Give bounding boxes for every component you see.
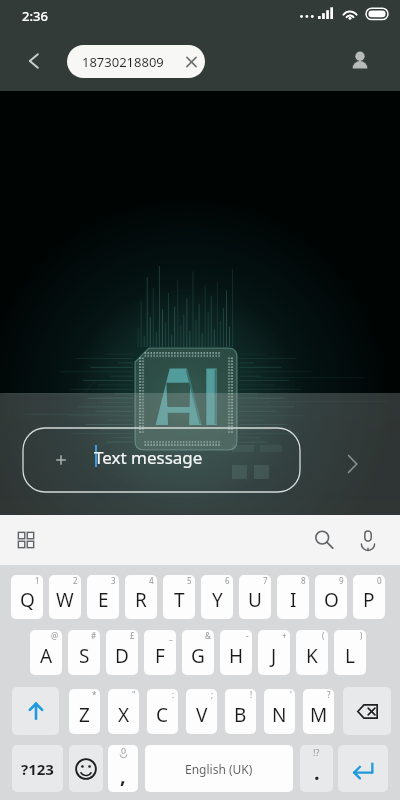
- staticText: V: [196, 702, 208, 728]
- button[interactable]: Enter: [338, 745, 388, 792]
- staticText: :: [172, 689, 175, 700]
- staticText: #: [91, 630, 97, 641]
- staticText: Q: [20, 587, 35, 613]
- staticText: G: [191, 643, 205, 669]
- staticText: B: [234, 702, 247, 728]
- button[interactable]: _: [144, 630, 176, 675]
- button[interactable]: ,: [108, 745, 138, 792]
- button[interactable]: -: [220, 630, 252, 675]
- staticText: 0: [377, 575, 382, 586]
- button[interactable]: 6: [201, 575, 233, 619]
- staticText: ,: [120, 762, 126, 789]
- staticText: 9: [339, 575, 344, 586]
- staticText: ': [290, 689, 292, 700]
- button[interactable]: #: [68, 630, 100, 675]
- button[interactable]: Backspace: [343, 687, 391, 735]
- staticText: F: [155, 643, 165, 669]
- button[interactable]: @: [30, 630, 62, 675]
- button[interactable]: :: [147, 689, 178, 734]
- staticText: (: [322, 630, 325, 641]
- staticText: J: [271, 643, 277, 669]
- staticText: P: [363, 587, 375, 613]
- staticText: N: [272, 702, 287, 728]
- button[interactable]: 9: [315, 575, 347, 619]
- button[interactable]: !?: [300, 745, 333, 792]
- button[interactable]: Add attachment: [46, 445, 76, 475]
- staticText: &: [205, 630, 211, 641]
- staticText: 1: [35, 575, 40, 586]
- staticText: T: [174, 587, 185, 613]
- button[interactable]: English (UK): [145, 745, 293, 792]
- button[interactable]: (: [296, 630, 328, 675]
- staticText: 2: [73, 575, 78, 586]
- button[interactable]: 0: [353, 575, 385, 619]
- staticText: 18730218809: [82, 53, 164, 71]
- staticText: 2:36: [22, 7, 48, 25]
- button[interactable]: ': [264, 689, 295, 734]
- button[interactable]: ;: [186, 689, 217, 734]
- staticText: E: [98, 587, 109, 613]
- staticText: Z: [79, 702, 90, 728]
- button[interactable]: £: [106, 630, 138, 675]
- staticText: K: [306, 643, 318, 669]
- button[interactable]: *: [69, 689, 100, 734]
- staticText: H: [229, 643, 244, 669]
- staticText: _: [169, 630, 173, 641]
- button[interactable]: !: [225, 689, 256, 734]
- button[interactable]: &: [182, 630, 214, 675]
- staticText: O: [324, 587, 339, 613]
- staticText: C: [156, 702, 169, 728]
- staticText: I: [290, 587, 297, 613]
- staticText: D: [115, 643, 129, 669]
- button[interactable]: Back: [18, 46, 48, 76]
- button[interactable]: Search: [309, 525, 339, 555]
- staticText: W: [56, 587, 74, 613]
- button[interactable]: ): [334, 630, 366, 675]
- button[interactable]: 1: [11, 575, 43, 619]
- button[interactable]: ?: [303, 689, 334, 734]
- staticText: £: [130, 630, 135, 641]
- button[interactable]: Contact info: [346, 47, 374, 75]
- staticText: R: [135, 587, 147, 613]
- staticText: 8: [301, 575, 306, 586]
- button[interactable]: Emoji: [69, 745, 103, 792]
- button[interactable]: Keyboard menu: [13, 527, 39, 553]
- button[interactable]: Shift: [12, 687, 59, 735]
- button[interactable]: 3: [87, 575, 119, 619]
- button[interactable]: [23, 428, 300, 492]
- staticText: 5: [187, 575, 192, 586]
- staticText: English (UK): [185, 761, 253, 777]
- staticText: .: [314, 759, 320, 786]
- button[interactable]: +: [258, 630, 290, 675]
- button[interactable]: 5: [163, 575, 195, 619]
- staticText: L: [345, 643, 355, 669]
- staticText: ;: [211, 689, 214, 700]
- staticText: !: [250, 689, 253, 700]
- staticText: -: [246, 630, 249, 641]
- button[interactable]: ?123: [12, 745, 63, 792]
- staticText: ": [132, 689, 136, 700]
- staticText: 4: [149, 575, 154, 586]
- staticText: 6: [225, 575, 230, 586]
- button[interactable]: 2: [49, 575, 81, 619]
- button[interactable]: ": [108, 689, 139, 734]
- staticText: U: [248, 587, 262, 613]
- button[interactable]: Send: [338, 448, 370, 480]
- staticText: +: [282, 630, 287, 641]
- staticText: M: [310, 702, 328, 728]
- staticText: 7: [263, 575, 268, 586]
- staticText: @: [51, 630, 59, 641]
- button[interactable]: 8: [277, 575, 309, 619]
- staticText: !?: [313, 746, 320, 758]
- staticText: S: [79, 643, 90, 669]
- staticText: Y: [212, 587, 223, 613]
- staticText: ?123: [21, 759, 54, 779]
- staticText: A: [40, 643, 53, 669]
- staticText: X: [118, 702, 130, 728]
- button[interactable]: 7: [239, 575, 271, 619]
- button[interactable]: 4: [125, 575, 157, 619]
- staticText: ): [360, 630, 363, 641]
- staticText: 3: [111, 575, 116, 586]
- button[interactable]: 18730218809: [67, 45, 205, 78]
- button[interactable]: Voice input: [353, 525, 383, 555]
